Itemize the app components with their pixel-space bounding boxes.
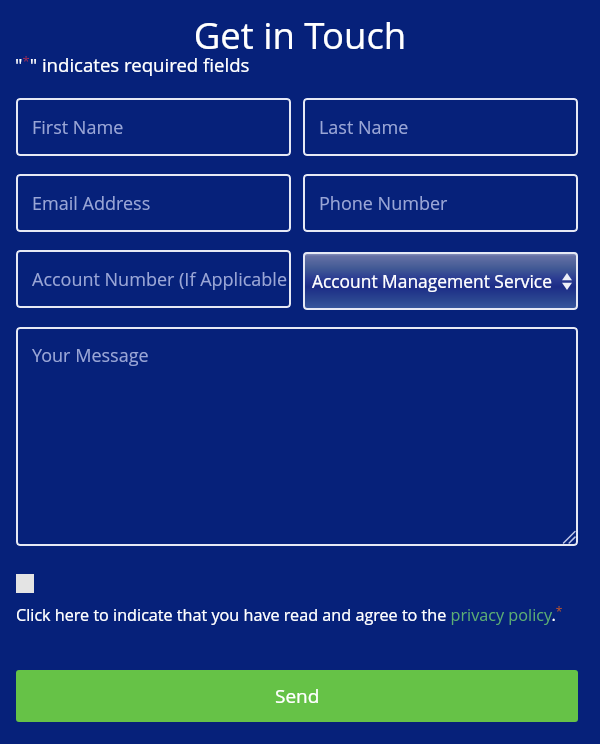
staticText: Send [275, 683, 320, 709]
button[interactable]: Last Name [303, 98, 578, 156]
button[interactable]: Your Message [16, 327, 578, 546]
button[interactable]: Account Management Service [303, 252, 578, 310]
staticText: Get in Touch [0, 10, 600, 60]
staticText: "*" indicates required fields [15, 52, 250, 78]
button[interactable]: Phone Number [303, 174, 578, 232]
staticText: Account Management Service [312, 269, 552, 293]
staticText: Account Number (If Applicable) [32, 267, 287, 292]
button[interactable]: Email Address [16, 174, 291, 232]
button[interactable]: Click here to indicate that you have rea… [16, 603, 563, 626]
staticText: Your Message [32, 343, 149, 368]
button[interactable]: First Name [16, 98, 291, 156]
button[interactable]: Send [16, 670, 578, 722]
staticText: Phone Number [319, 191, 448, 216]
button[interactable]: Account Number (If Applicable) [16, 250, 291, 308]
staticText: Email Address [32, 191, 151, 216]
staticText: Last Name [319, 115, 409, 140]
staticText: First Name [32, 115, 124, 140]
